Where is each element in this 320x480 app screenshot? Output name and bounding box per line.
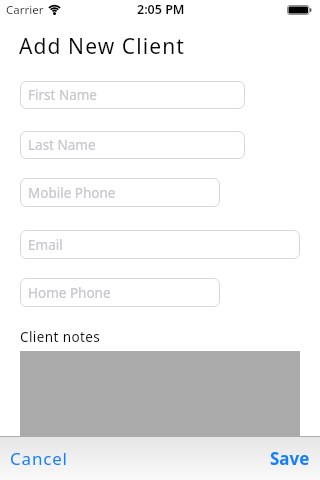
- staticText: Client notes: [20, 328, 101, 346]
- staticText: Mobile Phone: [28, 184, 116, 202]
- staticText: Home Phone: [28, 284, 111, 302]
- staticText: Carrier: [6, 2, 44, 18]
- staticText: First Name: [28, 86, 97, 104]
- button[interactable]: Cancel: [10, 447, 68, 470]
- button[interactable]: First Name: [20, 81, 245, 109]
- button[interactable]: Last Name: [20, 131, 245, 159]
- staticText: Cancel: [10, 447, 68, 470]
- button[interactable]: Home Phone: [20, 278, 220, 307]
- button[interactable]: Save: [270, 447, 310, 470]
- button[interactable]: Email: [20, 230, 300, 259]
- button[interactable]: Mobile Phone: [20, 178, 220, 207]
- staticText: Add New Client: [19, 32, 185, 61]
- staticText: Email: [28, 236, 63, 254]
- staticText: 2:05 PM: [137, 1, 185, 18]
- staticText: Save: [270, 447, 310, 470]
- staticText: Last Name: [28, 136, 96, 154]
